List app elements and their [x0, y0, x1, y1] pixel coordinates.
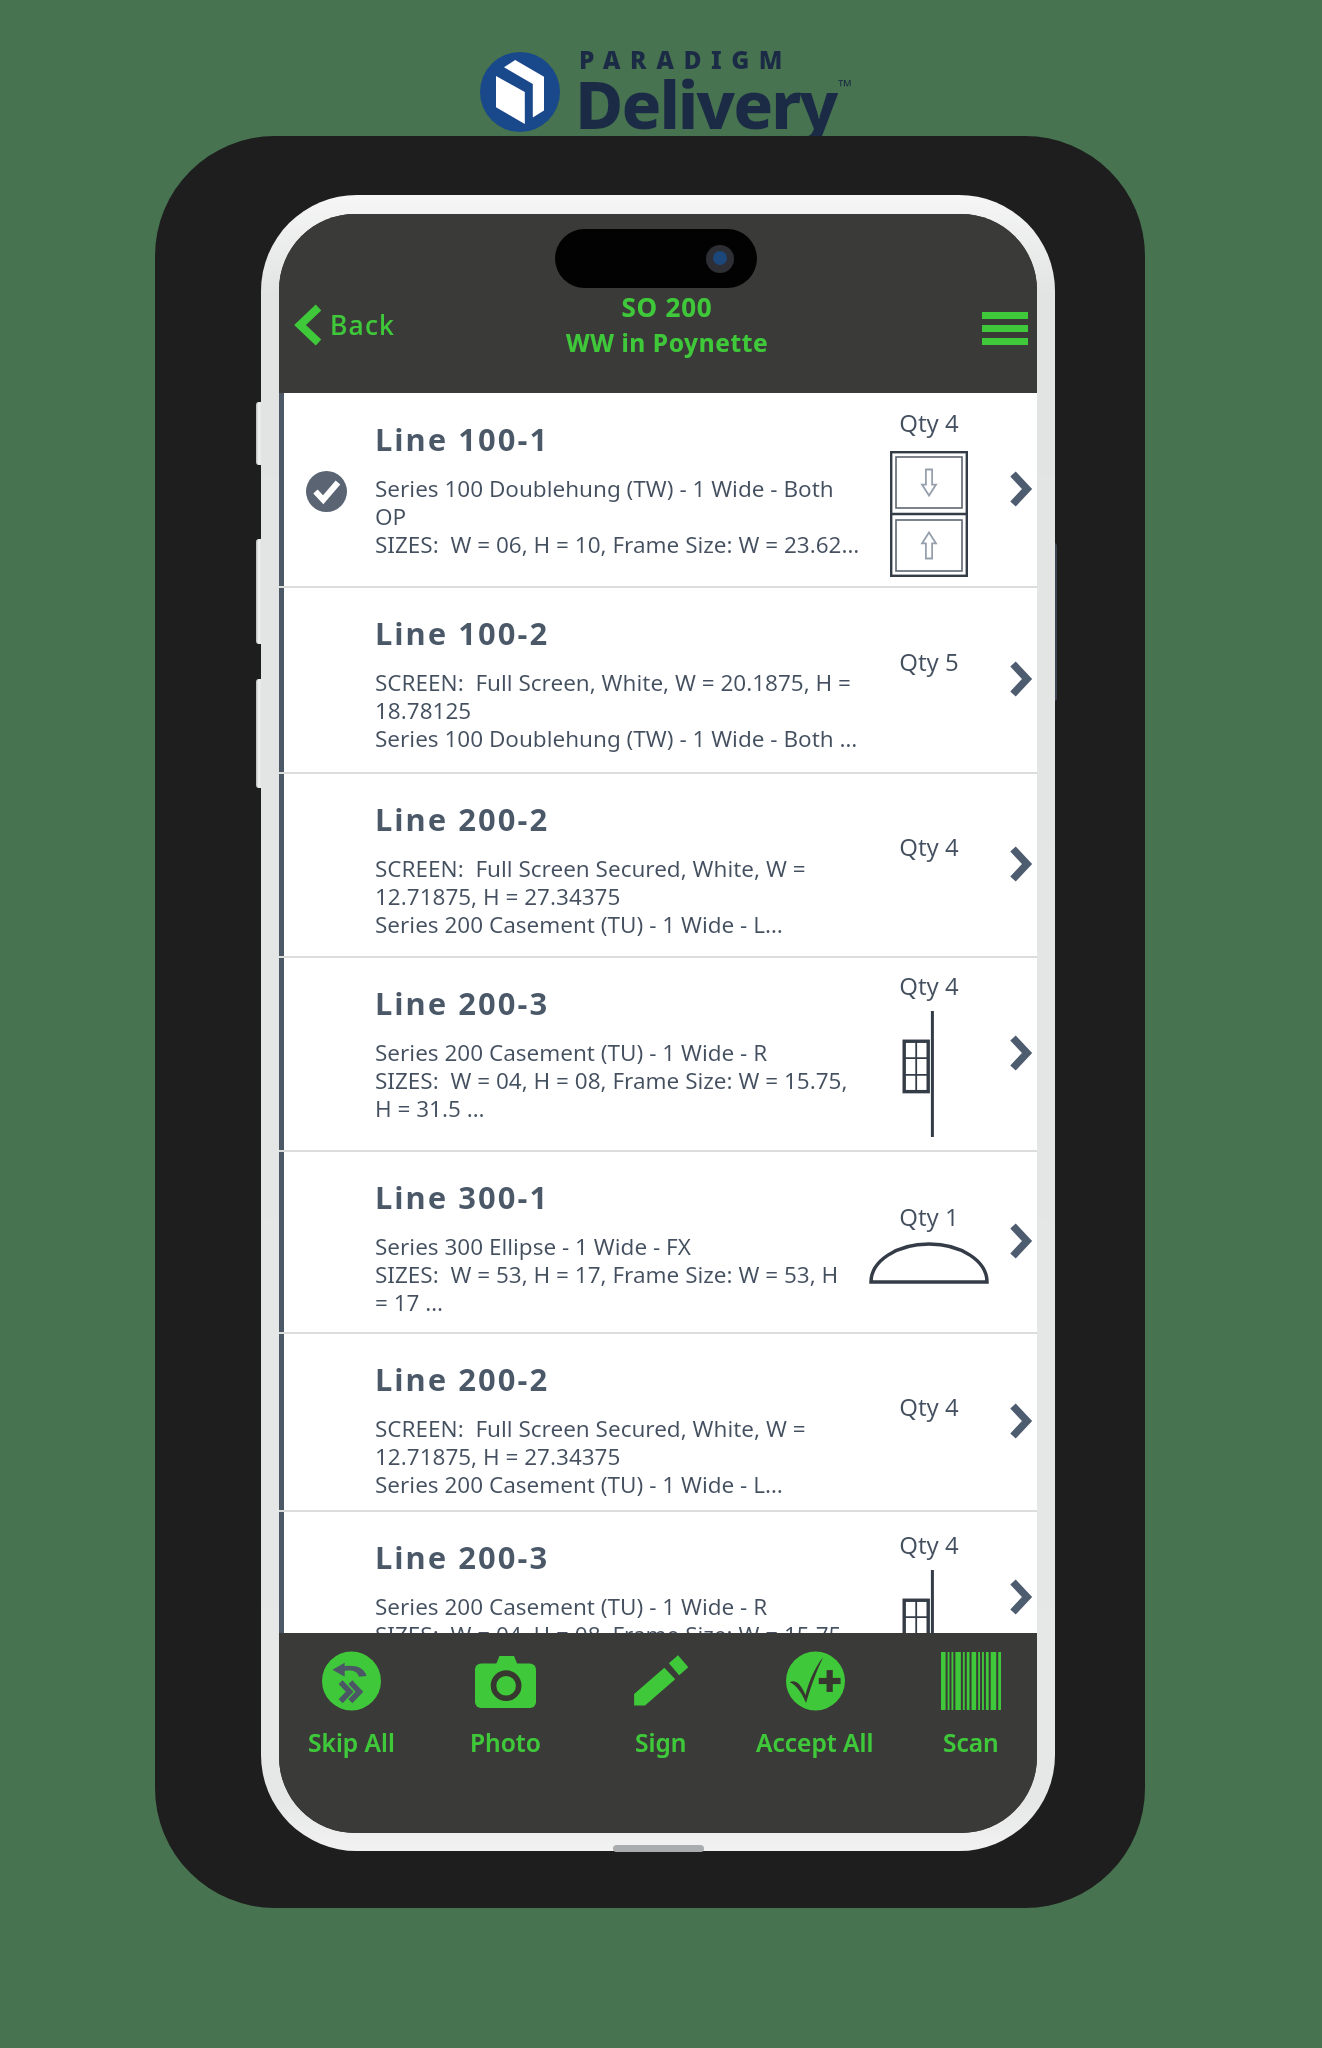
staticText: = 17 … [375, 1287, 444, 1318]
staticText: Line 200-3 [375, 1536, 550, 1578]
staticText: Qty 4 [864, 406, 994, 439]
staticText: SIZES: W = 04, H = 08, Frame Size: W = 1… [375, 1065, 848, 1096]
staticText: SIZES: W = 06, H = 10, Frame Size: W = 2… [375, 529, 860, 560]
staticText: Series 200 Casement (TU) - 1 Wide - R [375, 1591, 768, 1622]
staticText: OP [375, 501, 407, 532]
staticText: 12.71875, H = 27.34375 [375, 1441, 621, 1472]
staticText: Series 300 Ellipse - 1 Wide - FX [375, 1231, 691, 1262]
staticText: Qty 4 [864, 1528, 994, 1561]
staticText: H = 31.5 … [375, 1093, 485, 1124]
staticText: Line 200-2 [375, 1358, 550, 1400]
staticText: Line 300-1 [375, 1176, 550, 1218]
staticText: ™ [838, 74, 852, 99]
staticText: H = 31.5 … [375, 1647, 485, 1678]
staticText: Accept All [756, 1726, 874, 1759]
staticText: PARADIGM [579, 43, 793, 76]
button[interactable]: Scan [895, 1638, 1037, 1773]
button[interactable]: Line 200-3 [279, 956, 1037, 1150]
staticText: Series 200 Casement (TU) - 1 Wide - L… [375, 909, 783, 940]
button[interactable]: Line 300-1 [279, 1150, 1037, 1332]
staticText: Qty 5 [864, 645, 994, 678]
staticText: Line 100-1 [375, 418, 550, 460]
staticText: 18.78125 [375, 695, 472, 726]
staticText: Photo [470, 1726, 541, 1759]
staticText: 12.71875, H = 27.34375 [375, 881, 621, 912]
staticText: Series 200 Casement (TU) - 1 Wide - L… [375, 1469, 783, 1500]
staticText: SCREEN: Full Screen Secured, White, W = [375, 853, 806, 884]
staticText: Qty 4 [864, 830, 994, 863]
staticText: Back [330, 307, 396, 343]
staticText: SIZES: W = 04, H = 08, Frame Size: W = 1… [375, 1619, 848, 1650]
staticText: WW in Poynette [288, 326, 1037, 359]
staticText: Series 100 Doublehung (TW) - 1 Wide - Bo… [375, 473, 834, 504]
staticText: SIZES: W = 53, H = 17, Frame Size: W = 5… [375, 1259, 839, 1290]
button[interactable]: Photo [429, 1638, 581, 1773]
button[interactable]: Line 200-2 [279, 772, 1037, 956]
staticText: Skip All [308, 1726, 395, 1759]
staticText: Qty 4 [864, 1390, 994, 1423]
button[interactable]: Accepted [306, 471, 347, 512]
button[interactable]: Line 200-3 [279, 1510, 1037, 1684]
staticText: Qty 1 [864, 1200, 994, 1233]
staticText: SCREEN: Full Screen Secured, White, W = [375, 1413, 806, 1444]
button[interactable]: Line 100-2 [279, 586, 1037, 772]
staticText: Qty 4 [864, 969, 994, 1002]
staticText: Sign [635, 1726, 687, 1759]
button[interactable]: Line 200-2 [279, 1332, 1037, 1510]
button[interactable]: Menu [970, 300, 1037, 357]
staticText: Scan [943, 1726, 999, 1759]
staticText: Delivery [575, 58, 837, 148]
button[interactable]: Accept All [739, 1638, 891, 1773]
button[interactable]: Skip All [279, 1638, 427, 1773]
button[interactable]: Sign [585, 1638, 737, 1773]
button[interactable]: Back [286, 296, 410, 354]
staticText: Series 200 Casement (TU) - 1 Wide - R [375, 1037, 768, 1068]
staticText: SO 200 [288, 289, 1037, 324]
staticText: Line 200-2 [375, 798, 550, 840]
staticText: Line 100-2 [375, 612, 550, 654]
button[interactable]: Accepted [279, 393, 1037, 586]
staticText: SCREEN: Full Screen, White, W = 20.1875,… [375, 667, 851, 698]
staticText: Series 100 Doublehung (TW) - 1 Wide - Bo… [375, 723, 858, 754]
staticText: Line 200-3 [375, 982, 550, 1024]
